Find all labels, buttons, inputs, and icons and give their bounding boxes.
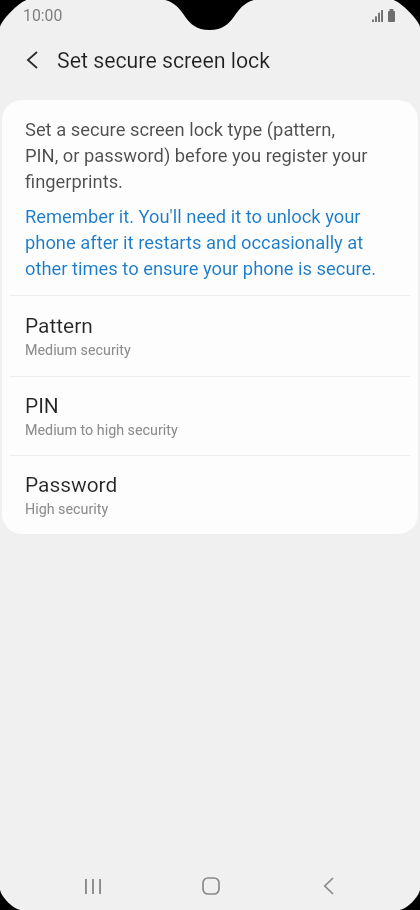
button[interactable]: Back	[304, 862, 352, 910]
staticText: High security	[25, 501, 109, 518]
button[interactable]: Navigate up	[13, 41, 51, 79]
staticText: 10:00	[23, 6, 63, 25]
staticText: PIN	[25, 394, 59, 418]
staticText: Remember it. You'll need it to unlock yo…	[25, 203, 377, 281]
button[interactable]: PIN	[2, 377, 418, 455]
staticText: Medium security	[25, 342, 131, 359]
button[interactable]: Home	[187, 862, 235, 910]
staticText: Medium to high security	[25, 422, 178, 439]
button[interactable]: Recent apps	[69, 862, 117, 910]
staticText: Pattern	[25, 314, 93, 338]
button[interactable]: Pattern	[2, 296, 418, 376]
button[interactable]: Password	[2, 456, 418, 534]
staticText: Set a secure screen lock type (pattern, …	[25, 116, 368, 194]
staticText: Password	[25, 473, 118, 497]
staticText: Set secure screen lock	[57, 48, 271, 73]
